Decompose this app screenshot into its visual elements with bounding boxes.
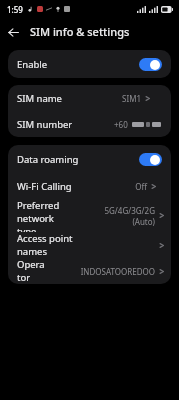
staticText: 1:59 — [7, 4, 23, 15]
staticText: Data roaming — [17, 153, 139, 166]
staticText: Operator — [17, 258, 48, 284]
button[interactable]: Operator — [8, 258, 171, 284]
staticText: Off — [135, 181, 147, 192]
staticText: INDOSATOOREDOO — [80, 266, 155, 277]
button[interactable]: SIM number — [8, 111, 171, 137]
staticText: (Auto) — [132, 216, 155, 227]
button[interactable]: Access point names — [8, 232, 171, 258]
staticText: +60 — [114, 119, 128, 130]
button[interactable]: Wi-Fi Calling — [8, 173, 171, 199]
staticText: Access point names — [17, 232, 86, 258]
staticText: SIM number — [17, 118, 73, 131]
button[interactable]: SIM name — [8, 85, 171, 111]
button[interactable]: Preferred network type — [8, 199, 171, 232]
button[interactable]: Back — [0, 19, 26, 45]
staticText: Wi-Fi Calling — [17, 180, 72, 193]
staticText: Preferred network type — [17, 199, 60, 232]
staticText: SIM1 — [122, 93, 141, 104]
staticText: SIM info & settings — [30, 24, 130, 39]
staticText: 5G/4G/3G/2G — [104, 205, 155, 216]
staticText: Enable — [17, 58, 139, 71]
staticText: SIM name — [17, 92, 62, 105]
button[interactable]: Data roaming — [8, 145, 171, 173]
button[interactable]: Enable — [8, 50, 171, 78]
